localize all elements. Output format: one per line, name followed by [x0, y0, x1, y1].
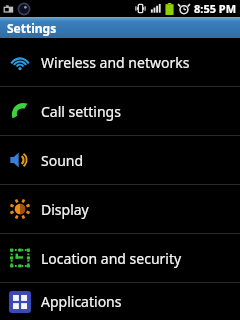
button[interactable]: Location and security — [0, 234, 240, 282]
staticText: Location and security — [41, 249, 182, 268]
button[interactable]: Sound — [0, 136, 240, 184]
button[interactable]: Applications — [0, 283, 240, 320]
staticText: Display — [41, 200, 89, 219]
staticText: 8:55 PM — [194, 1, 237, 16]
staticText: Applications — [41, 292, 122, 311]
staticText: Wireless and networks — [41, 53, 190, 72]
button[interactable]: Wireless and networks — [0, 38, 240, 86]
button[interactable]: Display — [0, 185, 240, 233]
staticText: Call settings — [41, 102, 121, 121]
staticText: Settings — [7, 20, 57, 36]
staticText: Sound — [41, 151, 84, 170]
button[interactable]: Call settings — [0, 87, 240, 135]
